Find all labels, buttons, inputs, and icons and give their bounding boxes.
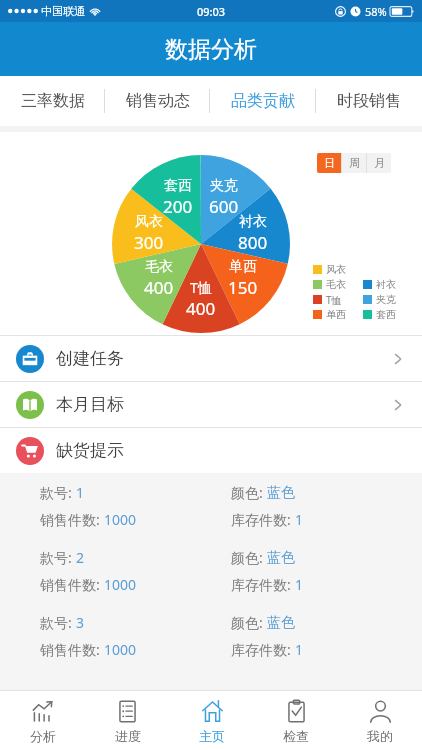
- staticText: 150: [228, 276, 258, 299]
- button[interactable]: 日: [317, 153, 341, 173]
- staticText: 时段销售: [337, 91, 401, 111]
- staticText: 创建任务: [56, 348, 124, 369]
- button[interactable]: 周: [342, 153, 366, 173]
- staticText: 400: [144, 276, 174, 299]
- staticText: 款号:: [40, 613, 76, 632]
- staticText: 衬衣: [239, 213, 267, 231]
- staticText: 品类贡献: [231, 91, 295, 111]
- staticText: T恤: [190, 278, 212, 297]
- button[interactable]: 时段销售: [316, 76, 422, 126]
- button[interactable]: 月: [367, 153, 391, 173]
- staticText: T恤: [326, 293, 342, 307]
- staticText: 月: [374, 156, 385, 170]
- staticText: 毛衣: [145, 258, 173, 276]
- staticText: 进度: [115, 728, 141, 744]
- staticText: 套西: [164, 177, 192, 195]
- button[interactable]: 进度: [85, 691, 170, 750]
- staticText: 库存件数:: [231, 510, 295, 529]
- staticText: 300: [134, 231, 164, 254]
- staticText: 中国联通: [41, 4, 85, 18]
- staticText: 1: [295, 640, 304, 659]
- staticText: 款号:: [40, 548, 76, 567]
- staticText: 58%: [365, 4, 387, 19]
- staticText: 销售动态: [126, 91, 190, 111]
- staticText: 夹克: [376, 293, 396, 306]
- staticText: 周: [349, 156, 360, 170]
- staticText: 蓝色: [267, 549, 295, 567]
- staticText: 单西: [229, 258, 257, 276]
- button[interactable]: 主页: [170, 691, 254, 750]
- staticText: 200: [163, 195, 193, 218]
- staticText: 1000: [104, 575, 137, 594]
- staticText: 夹克: [210, 177, 238, 195]
- staticText: 600: [209, 195, 239, 218]
- staticText: 我的: [367, 728, 393, 744]
- staticText: 颜色:: [231, 613, 267, 632]
- staticText: 日: [324, 156, 335, 170]
- staticText: 衬衣: [376, 278, 396, 291]
- button[interactable]: 销售动态: [105, 76, 210, 126]
- staticText: 三率数据: [21, 91, 85, 111]
- staticText: 1000: [104, 640, 137, 659]
- staticText: 400: [186, 297, 216, 320]
- staticText: 风衣: [135, 213, 163, 231]
- staticText: 本月目标: [56, 394, 124, 415]
- staticText: 款号:: [40, 483, 76, 502]
- staticText: 检查: [283, 728, 309, 744]
- staticText: 数据分析: [165, 35, 257, 64]
- button[interactable]: 三率数据: [0, 76, 105, 126]
- staticText: 3: [76, 613, 85, 632]
- button[interactable]: 创建任务: [0, 336, 422, 381]
- staticText: 颜色:: [231, 548, 267, 567]
- staticText: 1000: [104, 510, 137, 529]
- staticText: 销售件数:: [40, 510, 104, 529]
- staticText: 1: [295, 575, 304, 594]
- staticText: 库存件数:: [231, 640, 295, 659]
- staticText: 库存件数:: [231, 575, 295, 594]
- button[interactable]: 品类贡献: [210, 76, 316, 126]
- staticText: 销售件数:: [40, 640, 104, 659]
- staticText: 蓝色: [267, 614, 295, 632]
- button[interactable]: 检查: [254, 691, 338, 750]
- staticText: 分析: [30, 728, 56, 744]
- staticText: 缺货提示: [56, 440, 124, 461]
- staticText: 单西: [326, 308, 346, 321]
- staticText: 1: [76, 483, 85, 502]
- staticText: 毛衣: [326, 278, 346, 291]
- staticText: 2: [76, 548, 85, 567]
- staticText: 风衣: [326, 263, 346, 276]
- staticText: 蓝色: [267, 484, 295, 502]
- staticText: 09:03: [197, 4, 226, 19]
- button[interactable]: 缺货提示: [0, 428, 422, 473]
- button[interactable]: 我的: [338, 691, 422, 750]
- staticText: 颜色:: [231, 483, 267, 502]
- staticText: 800: [238, 231, 268, 254]
- staticText: 1: [295, 510, 304, 529]
- button[interactable]: 分析: [0, 691, 85, 750]
- staticText: 销售件数:: [40, 575, 104, 594]
- staticText: 套西: [376, 308, 396, 321]
- button[interactable]: 本月目标: [0, 382, 422, 427]
- staticText: 主页: [199, 728, 225, 744]
